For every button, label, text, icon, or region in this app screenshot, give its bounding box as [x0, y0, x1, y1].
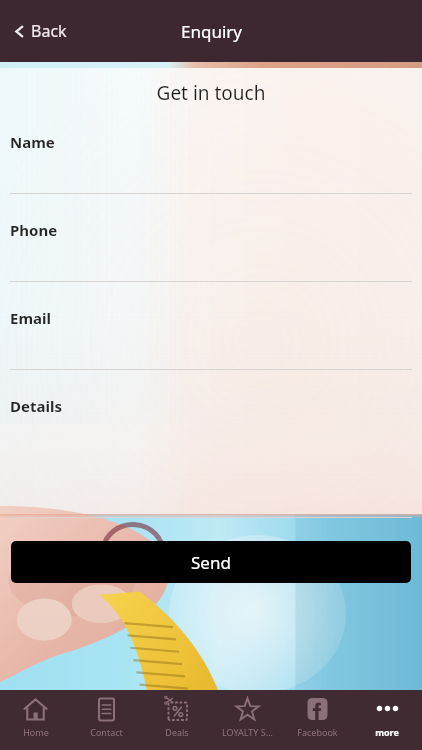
staticText: Contact [90, 726, 123, 738]
staticText: more [375, 726, 399, 738]
staticText: Get in touch [0, 80, 422, 106]
staticText: Deals [165, 726, 189, 738]
staticText: Send [191, 551, 231, 574]
staticText: LOYALTY S... [222, 726, 273, 738]
staticText: Phone [10, 220, 58, 240]
button[interactable]: Send [11, 541, 411, 583]
staticText: Email [10, 308, 51, 328]
button[interactable]: more [352, 690, 422, 750]
staticText: Enquiry [181, 20, 242, 43]
button[interactable]: Facebook [282, 690, 352, 750]
button[interactable]: Contact [71, 690, 142, 750]
staticText: Back [31, 20, 67, 42]
staticText: Facebook [297, 726, 338, 738]
staticText: Details [10, 396, 62, 416]
button[interactable]: LOYALTY S... [212, 690, 282, 750]
button[interactable]: Back [8, 14, 73, 48]
button[interactable]: Deals [142, 690, 212, 750]
staticText: Home [23, 726, 49, 738]
button[interactable]: Home [0, 690, 71, 750]
staticText: Name [10, 132, 55, 152]
